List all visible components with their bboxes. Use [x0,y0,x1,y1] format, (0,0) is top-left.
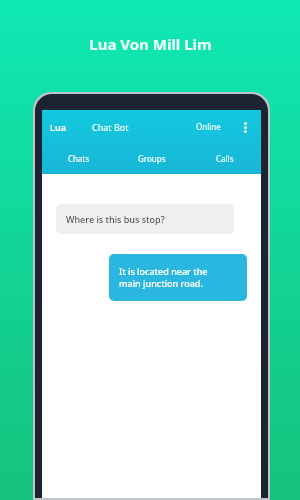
button[interactable]: It is located near the main junction roa… [109,254,247,301]
button[interactable]: Where is this bus stop? [56,204,234,234]
staticText: Lua [50,121,66,133]
button[interactable]: More options [237,119,253,135]
staticText: Online [196,121,221,132]
button[interactable]: Calls [188,143,261,174]
button[interactable]: Lua [42,110,261,143]
staticText: It is located near the main junction roa… [119,265,208,290]
staticText: Chats [68,153,90,164]
button[interactable]: Groups [115,143,188,174]
staticText: Chat Bot [92,121,129,133]
staticText: Calls [216,153,234,164]
button[interactable]: Chats [42,143,115,174]
staticText: Lua Von Mill Lim [89,34,212,54]
staticText: Where is this bus stop? [66,213,165,225]
staticText: Groups [138,153,166,164]
